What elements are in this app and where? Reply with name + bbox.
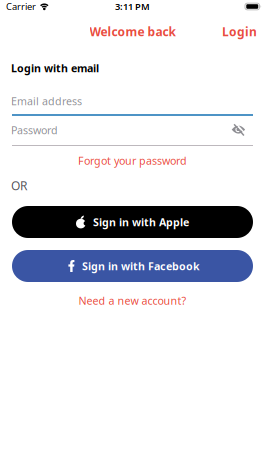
staticText: 3:11 PM	[115, 0, 150, 13]
staticText: Email address	[11, 94, 82, 108]
button[interactable]: Login	[222, 23, 257, 39]
button[interactable]: Forgot your password	[78, 153, 187, 168]
staticText: OR	[11, 177, 27, 193]
button[interactable]: Need a new account?	[78, 293, 186, 308]
staticText: Carrier	[6, 0, 36, 13]
staticText: Password	[11, 123, 58, 137]
button[interactable]: Sign in with Apple	[12, 206, 253, 238]
button[interactable]	[231, 123, 245, 136]
staticText: Forgot your password	[78, 153, 187, 168]
staticText: Login	[222, 23, 257, 39]
staticText: Login with email	[11, 61, 99, 75]
staticText: Welcome back	[89, 23, 175, 39]
staticText: Sign in with Apple	[93, 215, 189, 229]
staticText: Sign in with Facebook	[82, 259, 200, 273]
button[interactable]: Sign in with Facebook	[12, 250, 253, 282]
staticText: Need a new account?	[78, 293, 186, 308]
